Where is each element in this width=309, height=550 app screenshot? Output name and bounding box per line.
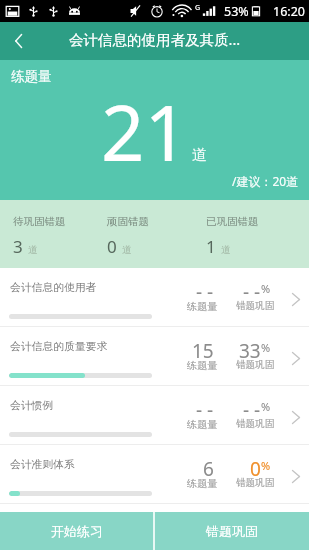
staticText: - - [196,397,214,423]
staticText: % [261,399,271,414]
staticText: 练题量 [187,477,218,490]
staticText: 错题巩固 [236,359,275,371]
staticText: 道 [192,146,207,165]
button[interactable]: Back [0,22,38,60]
staticText: 会计信息的质量要求 [10,340,108,354]
staticText: 道 [221,244,231,256]
button[interactable]: 会计信息的质量要求 [0,327,309,386]
button[interactable]: 会计惯例 [0,386,309,445]
staticText: 练题量 [187,300,218,313]
staticText: 道 [28,244,38,256]
staticText: 道 [122,244,132,256]
button[interactable]: 错题巩固 [155,512,309,550]
staticText: 错题巩固 [206,523,258,539]
staticText: - - [243,279,261,305]
button[interactable]: 会计信息的使用者 [0,268,309,327]
staticText: 练题量 [187,359,218,372]
staticText: 16:20 [273,3,305,20]
button[interactable]: 会计准则体系 [0,445,309,504]
staticText: 开始练习 [51,523,103,539]
staticText: % [261,458,271,473]
staticText: 6 [203,456,214,482]
staticText: - - [243,397,261,423]
button[interactable]: 开始练习 [0,512,153,550]
staticText: % [261,340,271,355]
staticText: 53% [224,3,249,20]
staticText: 错题巩固 [236,477,275,489]
staticText: 33 [239,338,261,364]
staticText: 错题巩固 [236,418,275,430]
staticText: 会计信息的使用者 [10,281,97,295]
staticText: 已巩固错题 [206,215,259,228]
staticText: 15 [192,338,214,364]
staticText: G [195,3,201,13]
staticText: 1 [206,235,216,258]
staticText: 练题量 [187,418,218,431]
staticText: 会计准则体系 [10,458,75,472]
staticText: 会计惯例 [10,399,54,413]
staticText: % [261,281,271,296]
staticText: 0 [107,235,117,258]
staticText: 顽固错题 [107,215,149,228]
staticText: 待巩固错题 [13,215,66,228]
staticText: 练题量 [11,68,52,85]
staticText: - - [196,279,214,305]
staticText: 21 [101,80,188,184]
staticText: 错题巩固 [236,300,275,312]
staticText: 3 [13,235,23,258]
staticText: 会计信息的使用者及其质... [69,29,241,49]
staticText: /建议：20道 [232,173,299,189]
staticText: 0 [250,456,261,482]
